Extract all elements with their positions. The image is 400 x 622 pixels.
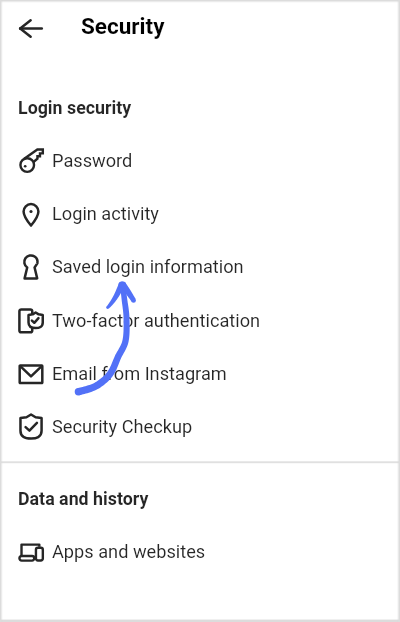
staticText: Security xyxy=(81,13,165,39)
button[interactable]: Email from Instagram xyxy=(0,347,400,400)
staticText: Saved login information xyxy=(52,256,244,277)
button[interactable]: Apps and websites xyxy=(0,525,400,578)
staticText: Password xyxy=(52,150,133,171)
staticText: Login activity xyxy=(52,203,159,224)
staticText: Apps and websites xyxy=(52,541,206,562)
staticText: Security Checkup xyxy=(52,416,193,437)
button[interactable]: Saved login information xyxy=(0,240,400,293)
staticText: Email from Instagram xyxy=(52,363,227,384)
button[interactable]: Back xyxy=(5,2,57,54)
button[interactable]: Two-factor authentication xyxy=(0,294,400,347)
staticText: Login security xyxy=(18,97,132,118)
staticText: Data and history xyxy=(18,488,149,509)
button[interactable]: Security Checkup xyxy=(0,400,400,453)
staticText: Two-factor authentication xyxy=(52,310,261,331)
button[interactable]: Login activity xyxy=(0,187,400,240)
button[interactable]: Password xyxy=(0,134,400,187)
